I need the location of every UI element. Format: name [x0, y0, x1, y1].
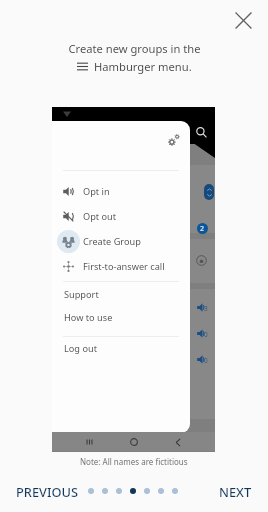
staticText: Create new groups in the [68, 41, 201, 56]
button[interactable]: Search [192, 123, 210, 141]
staticText: Log out [64, 342, 97, 355]
button[interactable]: Support [52, 283, 190, 305]
button[interactable]: How to use [52, 306, 190, 328]
staticText: NEXT [219, 483, 252, 499]
button[interactable]: Home [127, 435, 141, 449]
button[interactable]: Scroll [204, 184, 214, 200]
staticText: Create Group [83, 235, 141, 248]
staticText: Opt out [83, 210, 117, 223]
button[interactable]: Log out [52, 337, 190, 359]
staticText: 3 [204, 304, 208, 313]
staticText: 0 [204, 330, 208, 339]
button[interactable]: Close [229, 6, 258, 35]
button[interactable]: Settings [163, 128, 185, 150]
staticText: 0 [204, 356, 208, 365]
button[interactable]: NEXT [213, 478, 258, 504]
button[interactable]: Opt in [52, 179, 190, 204]
staticText: Opt in [83, 185, 110, 198]
staticText: Hamburger menu. [94, 59, 192, 74]
button[interactable]: Create Group [52, 229, 190, 254]
button[interactable]: Volume 3 [197, 302, 209, 314]
staticText: Note: All names are fictitious [80, 456, 188, 467]
staticText: 2 [200, 224, 205, 234]
button[interactable]: First-to-answer call [52, 254, 190, 279]
button[interactable]: PREVIOUS [10, 478, 84, 504]
button[interactable]: Recents [82, 435, 96, 449]
staticText: Support [64, 288, 99, 301]
staticText: PREVIOUS [16, 483, 78, 499]
staticText: How to use [64, 311, 113, 324]
button[interactable]: Opt out [52, 204, 190, 229]
staticText: First-to-answer call [83, 260, 165, 273]
button[interactable]: Volume 0 [197, 328, 209, 340]
button[interactable]: Volume 0 [197, 354, 209, 366]
button[interactable]: Back [171, 435, 185, 449]
